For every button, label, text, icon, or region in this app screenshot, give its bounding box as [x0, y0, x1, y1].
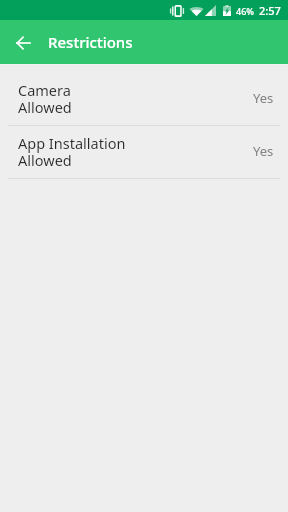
staticText: Allowed	[18, 153, 72, 170]
button[interactable]: Camera	[0, 73, 288, 126]
staticText: Allowed	[18, 100, 72, 117]
staticText: Camera	[18, 83, 71, 100]
staticText: 2:57	[259, 3, 281, 18]
button[interactable]: App Installation	[0, 126, 288, 179]
staticText: 46%	[236, 5, 254, 17]
button[interactable]: Back	[8, 28, 38, 58]
staticText: Restrictions	[48, 32, 133, 52]
staticText: Yes	[253, 142, 274, 160]
staticText: App Installation	[18, 136, 126, 153]
staticText: Yes	[253, 89, 274, 107]
